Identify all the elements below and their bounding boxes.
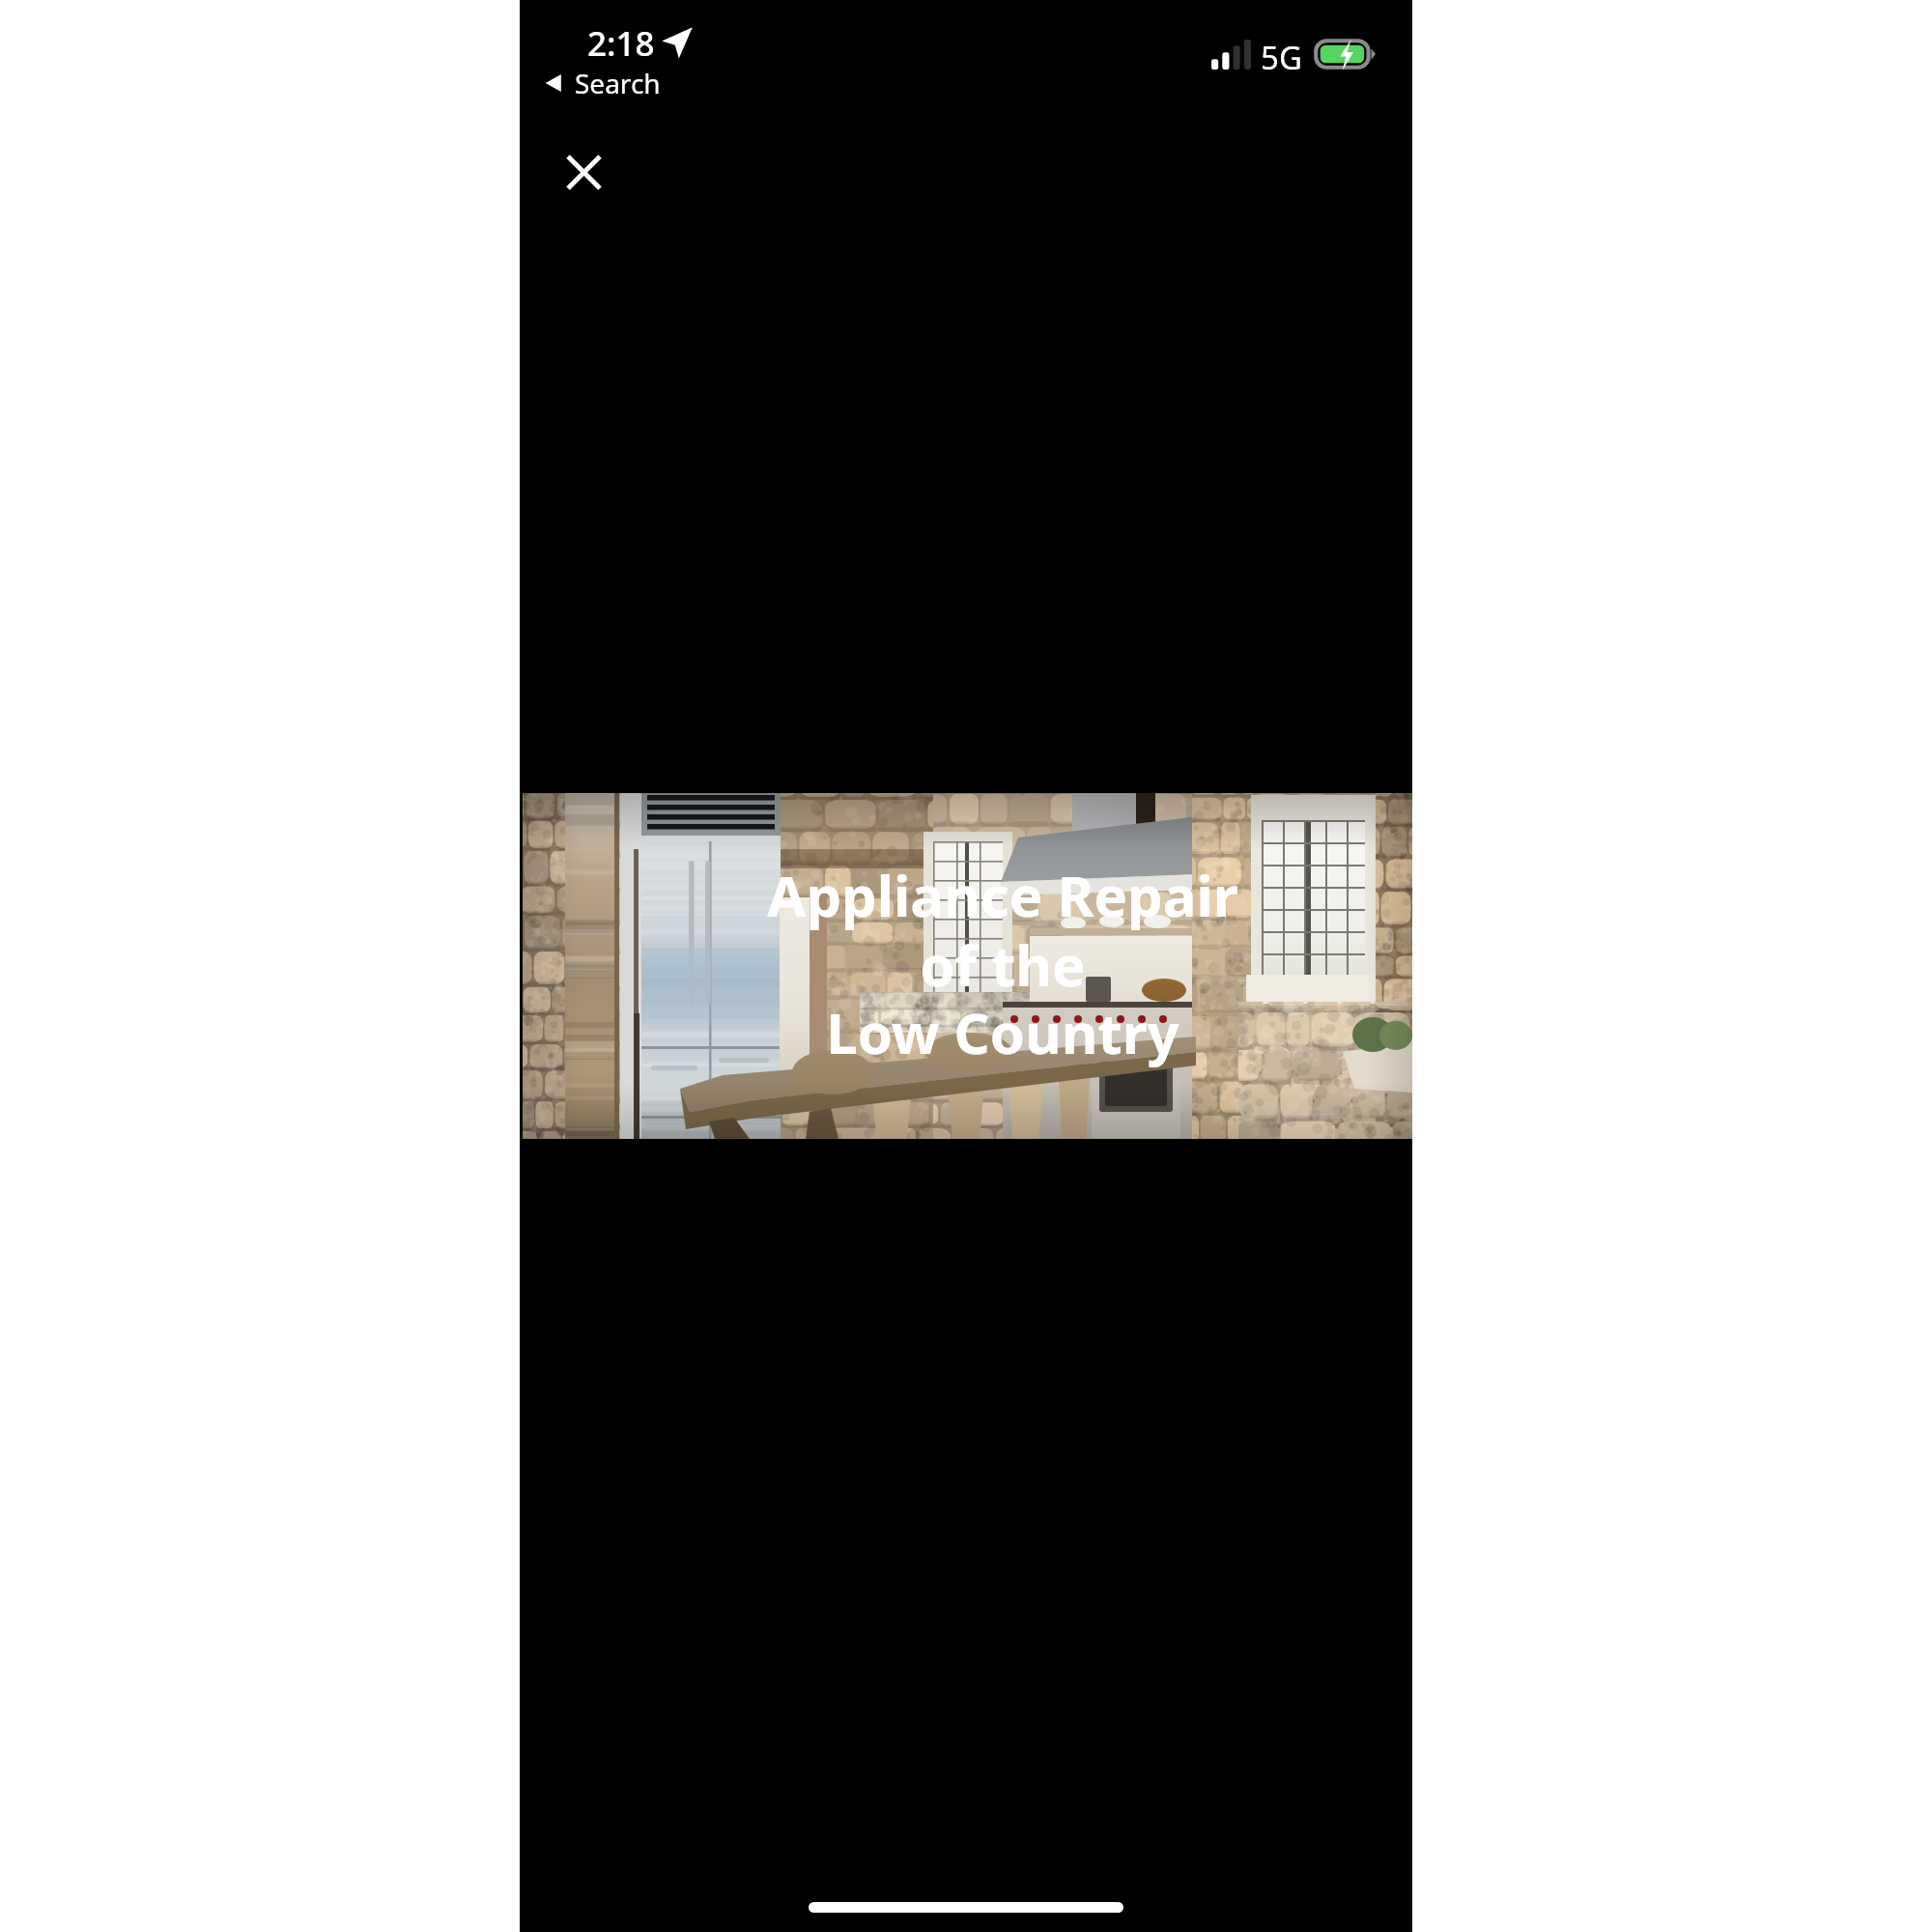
button[interactable]: Appliance Repair of the Low Country adve… bbox=[520, 793, 1412, 1139]
staticText: of the bbox=[920, 926, 1086, 1003]
staticText: Low Country bbox=[826, 994, 1179, 1070]
staticText: 2:18 bbox=[587, 20, 655, 67]
button[interactable]: Back to Search bbox=[541, 65, 661, 101]
button[interactable]: Close bbox=[547, 135, 620, 209]
staticText: Search bbox=[575, 65, 661, 101]
staticText: Appliance Repair bbox=[767, 857, 1238, 933]
staticText: 5G bbox=[1261, 36, 1302, 79]
